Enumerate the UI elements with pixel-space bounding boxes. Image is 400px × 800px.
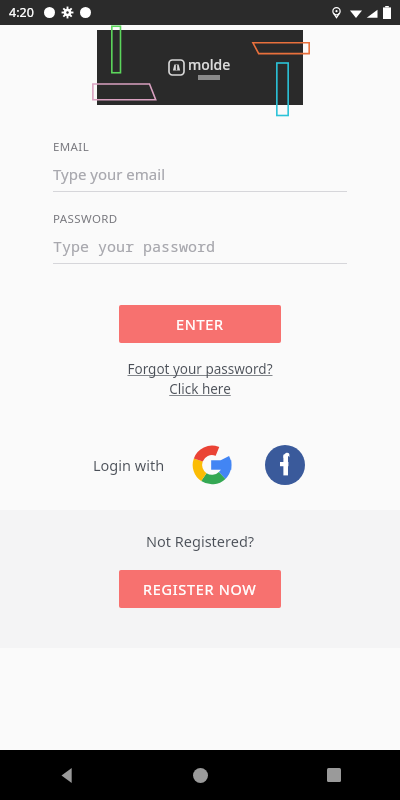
staticText: EMAIL	[53, 139, 90, 155]
button[interactable]: ENTER	[119, 305, 281, 343]
staticText: Type your password	[53, 236, 216, 256]
button[interactable]: Back	[0, 750, 134, 800]
staticText: Login with	[93, 455, 165, 475]
staticText: 4:20	[9, 4, 34, 21]
staticText: Click here	[169, 380, 231, 398]
staticText: Forgot your password?	[127, 360, 273, 378]
button[interactable]: Forgot your password?	[0, 360, 400, 398]
staticText: PASSWORD	[53, 211, 118, 227]
button[interactable]: PASSWORD	[0, 211, 400, 264]
staticText: molde	[188, 55, 231, 74]
button[interactable]: EMAIL	[0, 139, 400, 192]
button[interactable]: REGISTER NOW	[119, 570, 281, 608]
staticText: REGISTER NOW	[143, 579, 257, 599]
button[interactable]: Recent apps	[267, 750, 400, 800]
staticText: ENTER	[176, 314, 224, 334]
button[interactable]: Home	[134, 750, 267, 800]
button[interactable]: Login with Google	[189, 442, 235, 488]
staticText: Type your email	[53, 164, 166, 184]
staticText: Not Registered?	[146, 531, 255, 551]
button[interactable]: Login with Facebook	[263, 443, 307, 487]
